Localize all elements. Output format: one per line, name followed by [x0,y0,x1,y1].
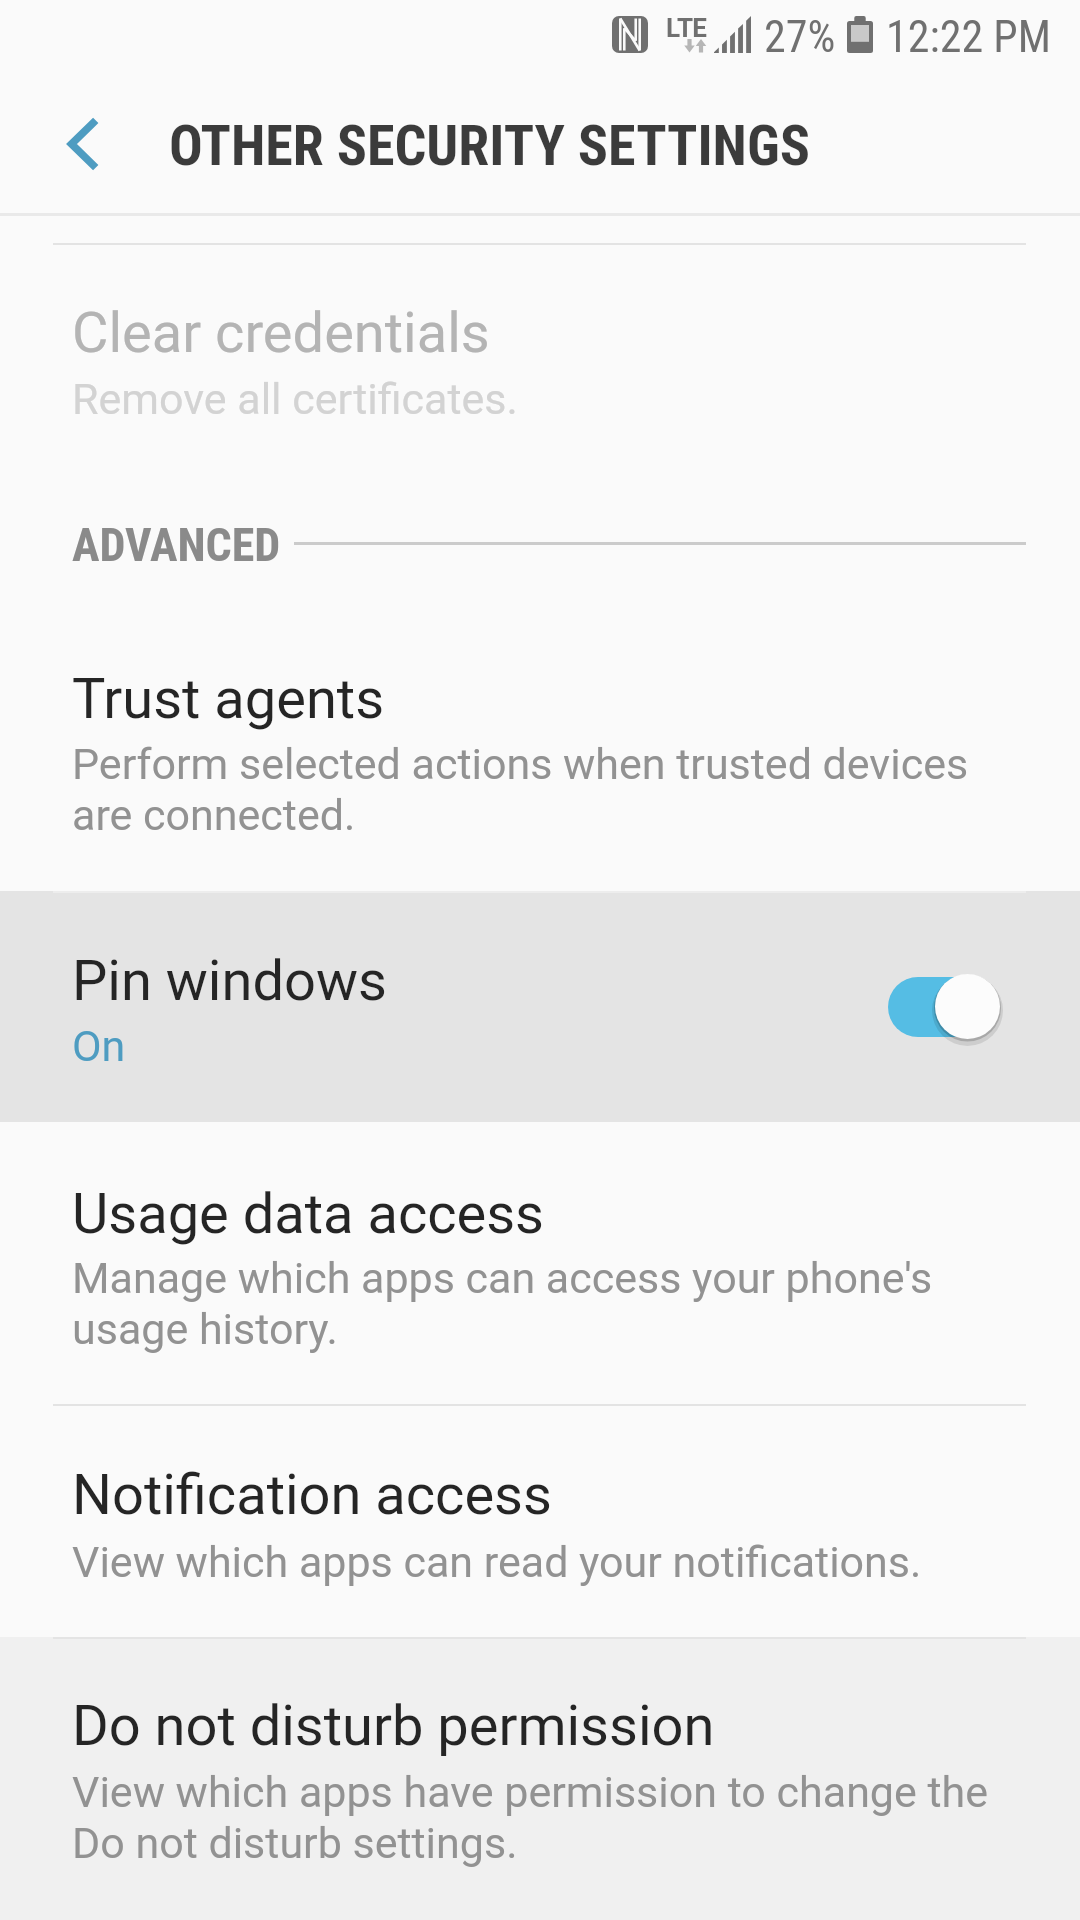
staticText: Manage which apps can access your phone'… [72,1253,1014,1355]
staticText: Pin windows [72,948,387,1014]
button[interactable] [0,244,1080,466]
staticText: Perform selected actions when trusted de… [72,739,1014,841]
staticText: View which apps can read your notificati… [72,1537,1014,1587]
staticText: Clear credentials [72,300,490,366]
staticText: Trust agents [72,666,385,732]
button[interactable] [0,620,1080,891]
staticText: 12:22 PM [886,11,1051,63]
staticText: OTHER SECURITY SETTINGS [169,113,810,179]
button[interactable] [0,1404,1080,1637]
button[interactable] [0,891,1080,1122]
button[interactable]: Navigate up [26,96,138,192]
staticText: ADVANCED [72,518,281,572]
staticText: On [72,1021,1014,1071]
button[interactable] [0,1122,1080,1404]
staticText: Do not disturb permission [72,1693,715,1759]
staticText: Notification access [72,1462,552,1528]
staticText: Remove all certificates. [72,374,1014,424]
button[interactable] [0,1637,1080,1920]
staticText: 27% [764,11,836,63]
button[interactable]: Pin windows, on [880,964,1010,1050]
staticText: View which apps have permission to chang… [72,1767,1014,1869]
staticText: Usage data access [72,1181,545,1247]
staticText: LTE [666,13,707,43]
